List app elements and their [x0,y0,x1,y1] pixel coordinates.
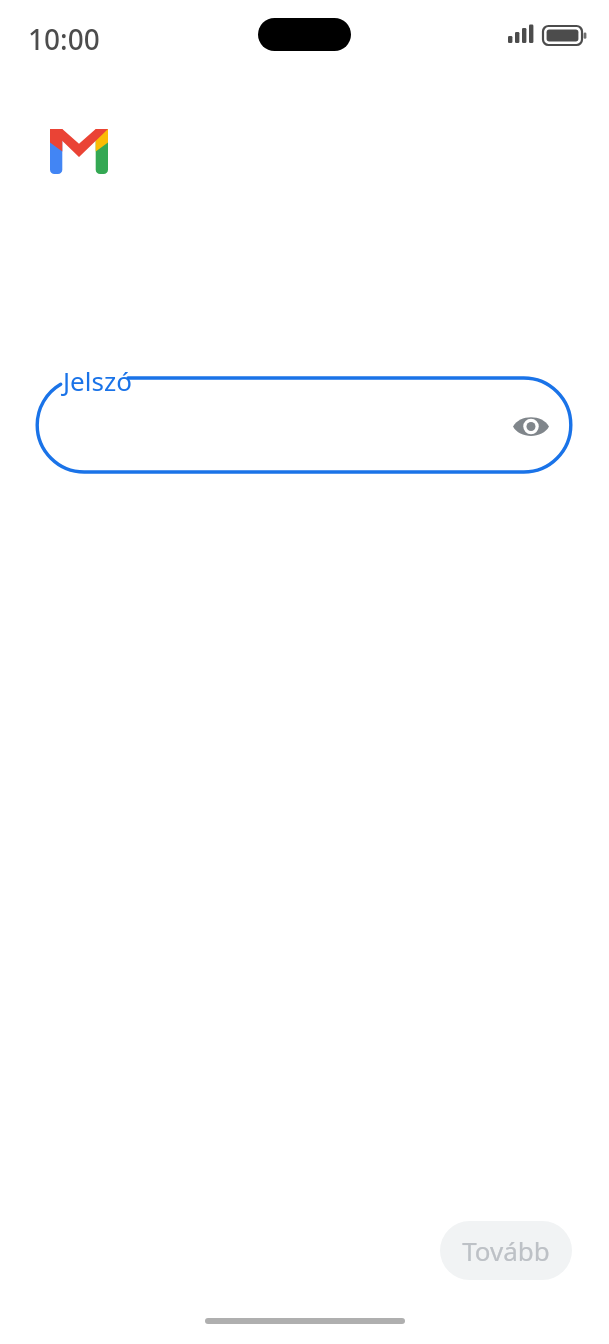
staticText: 10:00 [28,20,100,58]
button[interactable]: Jelszó [34,362,574,486]
button[interactable]: Jelszó megjelenítése [503,398,559,454]
staticText: Jelszó [63,363,132,398]
staticText: Tovább [462,1233,550,1268]
button[interactable]: Tovább [440,1221,572,1280]
other: Gmail [50,129,108,174]
